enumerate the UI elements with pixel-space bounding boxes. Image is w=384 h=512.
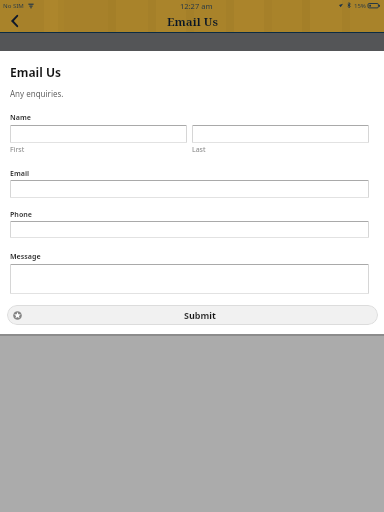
staticText: Message: [10, 252, 41, 262]
button[interactable]: [10, 125, 187, 143]
staticText: Submit: [184, 309, 216, 321]
button[interactable]: [10, 264, 369, 294]
button[interactable]: Submit: [7, 305, 378, 325]
staticText: Phone: [10, 210, 33, 220]
button[interactable]: [10, 221, 369, 238]
staticText: 12:27 am: [180, 1, 213, 11]
staticText: 15%: [354, 2, 366, 10]
button[interactable]: Back: [0, 13, 30, 32]
staticText: Email: [10, 169, 30, 179]
staticText: First: [10, 145, 25, 155]
button[interactable]: [10, 180, 369, 198]
staticText: No SIM: [3, 2, 24, 10]
staticText: Email Us: [10, 64, 61, 80]
staticText: Last: [192, 145, 206, 155]
staticText: Email Us: [167, 14, 218, 30]
staticText: Name: [10, 113, 31, 123]
button[interactable]: [192, 125, 369, 143]
staticText: Any enquiries.: [10, 88, 64, 99]
